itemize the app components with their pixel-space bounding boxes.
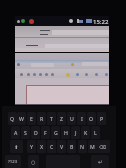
staticText: Y <box>30 143 34 150</box>
button[interactable]: B <box>67 140 76 153</box>
button[interactable]: ⌫ <box>96 140 110 153</box>
button[interactable]: S <box>21 126 30 139</box>
staticText: ↵ <box>98 159 103 165</box>
button[interactable]: V <box>57 140 66 153</box>
button[interactable]: K <box>81 126 90 139</box>
staticText: X <box>40 143 44 150</box>
staticText: L <box>94 129 97 136</box>
staticText: S <box>24 129 27 136</box>
button[interactable]: J <box>71 126 80 139</box>
staticText: ○ <box>31 159 36 165</box>
staticText: J <box>75 129 77 136</box>
button[interactable]: R <box>37 112 46 125</box>
staticText: F <box>44 129 47 136</box>
staticText: ?123 <box>8 159 18 165</box>
staticText: G <box>54 129 58 136</box>
button[interactable]: G <box>51 126 60 139</box>
staticText: T <box>50 115 53 122</box>
staticText: ⌫ <box>99 144 107 150</box>
button[interactable]: X <box>37 140 46 153</box>
staticText: P <box>100 115 104 122</box>
button[interactable]: ↵ <box>91 155 109 168</box>
button[interactable]: D <box>31 126 40 139</box>
staticText: B <box>70 143 74 150</box>
button[interactable]: ?123 <box>5 155 21 168</box>
button[interactable]: L <box>91 126 100 139</box>
button[interactable]: Y <box>27 140 36 153</box>
staticText: A <box>14 129 18 136</box>
button[interactable]: Z <box>57 112 66 125</box>
button[interactable]: O <box>87 112 96 125</box>
button[interactable]: H <box>61 126 70 139</box>
button[interactable]: F <box>41 126 50 139</box>
staticText: O <box>89 115 94 122</box>
button[interactable]: ○ <box>28 155 39 168</box>
button[interactable]: A <box>11 126 20 139</box>
button[interactable]: E <box>27 112 36 125</box>
staticText: Z <box>60 115 63 122</box>
button[interactable]: P <box>97 112 106 125</box>
staticText: U <box>70 115 74 122</box>
staticText: I <box>81 115 83 122</box>
staticText: V <box>60 143 64 150</box>
staticText: M <box>90 143 95 150</box>
staticText: D <box>34 129 38 136</box>
button[interactable]: T <box>47 112 56 125</box>
staticText: W <box>19 115 24 122</box>
staticText: H <box>64 129 68 136</box>
staticText: R <box>40 115 44 122</box>
staticText: C <box>50 143 54 150</box>
button[interactable]: C <box>47 140 56 153</box>
staticText: Q <box>10 115 15 122</box>
staticText: E <box>30 115 33 122</box>
button[interactable]: U <box>67 112 76 125</box>
button[interactable]: Q <box>8 112 17 125</box>
button[interactable]: ⬆ <box>10 140 23 153</box>
button[interactable]: I <box>77 112 86 125</box>
button[interactable]: N <box>78 140 87 153</box>
staticText: 15:22 <box>93 18 109 26</box>
staticText: N <box>80 143 85 150</box>
staticText: ⬆ <box>14 144 19 150</box>
staticText: K <box>84 129 88 136</box>
button[interactable]: W <box>17 112 26 125</box>
button[interactable]: M <box>88 140 97 153</box>
